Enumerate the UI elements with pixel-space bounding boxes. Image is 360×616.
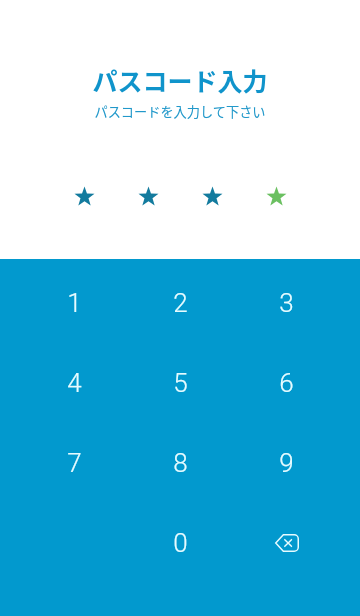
button[interactable]: 5 [127,343,233,423]
button[interactable]: 1 [21,263,127,343]
staticText: 6 [279,368,294,398]
staticText: 2 [173,288,188,318]
staticText: 4 [67,368,82,398]
staticText: 8 [173,448,188,478]
button[interactable]: 0 [127,503,233,583]
button[interactable]: 4 [21,343,127,423]
button[interactable]: 6 [233,343,339,423]
staticText: 7 [67,448,82,478]
staticText: 9 [279,448,294,478]
staticText: パスコードを入力して下さい [94,102,266,121]
staticText: パスコード入力 [92,62,268,98]
staticText: 5 [173,368,188,398]
button[interactable]: 9 [233,423,339,503]
button[interactable]: Delete last digit [233,503,339,583]
staticText: 1 [67,288,82,318]
button[interactable]: 8 [127,423,233,503]
button[interactable]: 3 [233,263,339,343]
button[interactable]: 7 [21,423,127,503]
button[interactable]: 2 [127,263,233,343]
staticText: 3 [279,288,294,318]
staticText: 0 [173,528,188,558]
